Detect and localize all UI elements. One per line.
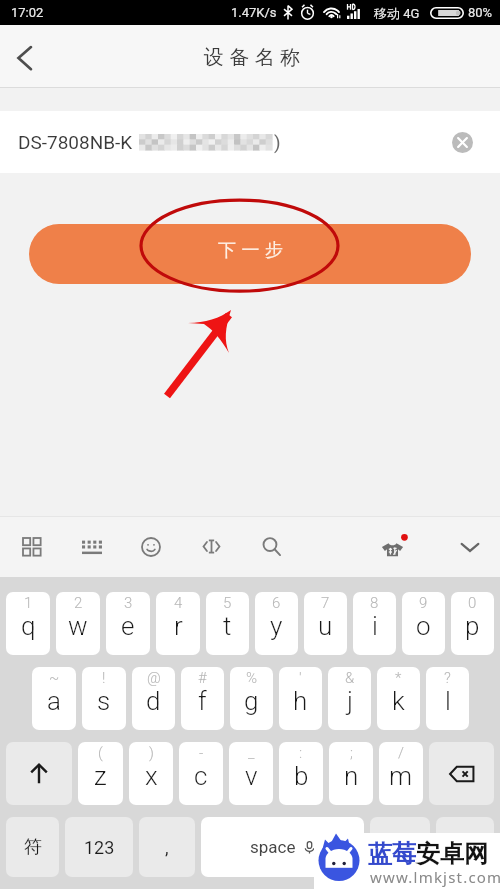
staticText: 换行 bbox=[449, 837, 481, 857]
button[interactable]: Backspace bbox=[429, 742, 494, 805]
staticText: ~ bbox=[49, 669, 60, 687]
staticText: l bbox=[445, 686, 451, 716]
button[interactable]: Grid layout bbox=[14, 516, 50, 577]
staticText: 1.47K/s bbox=[231, 5, 277, 20]
staticText: e bbox=[121, 611, 135, 641]
staticText: 1 bbox=[24, 594, 33, 612]
staticText: 4 bbox=[174, 594, 183, 612]
staticText: p bbox=[465, 611, 480, 641]
staticText: a bbox=[47, 686, 61, 716]
button[interactable]: 123 bbox=[65, 817, 133, 877]
button[interactable]: ) bbox=[129, 742, 173, 805]
button[interactable]: 9 bbox=[402, 592, 445, 655]
button[interactable]: / bbox=[379, 742, 423, 805]
button[interactable]: Theme skin bbox=[374, 516, 410, 577]
staticText: 安卓网 bbox=[416, 839, 488, 869]
staticText: DS-7808NB-K bbox=[18, 131, 133, 153]
staticText: / bbox=[398, 744, 404, 762]
staticText: : bbox=[299, 744, 303, 762]
button[interactable]: Hide keyboard bbox=[452, 516, 488, 577]
button[interactable]: Shift bbox=[6, 742, 72, 805]
staticText: # bbox=[198, 669, 207, 687]
button[interactable]: * bbox=[377, 667, 420, 730]
button[interactable]: _ bbox=[229, 742, 273, 805]
staticText: 9 bbox=[419, 594, 428, 612]
button[interactable]: 5 bbox=[206, 592, 249, 655]
staticText: m bbox=[389, 761, 413, 791]
button[interactable]: ? bbox=[426, 667, 469, 730]
staticText: r bbox=[174, 611, 183, 641]
button[interactable]: @ bbox=[132, 667, 175, 730]
button[interactable]: 8 bbox=[353, 592, 396, 655]
button[interactable]: Emoji bbox=[133, 516, 169, 577]
staticText: w bbox=[68, 611, 88, 641]
button[interactable]: 7 bbox=[304, 592, 347, 655]
button[interactable]: ~ bbox=[32, 667, 76, 730]
button[interactable]: % bbox=[230, 667, 273, 730]
staticText: v bbox=[245, 761, 258, 791]
staticText: @ bbox=[147, 669, 161, 687]
staticText: x bbox=[145, 761, 158, 791]
staticText: y bbox=[270, 611, 283, 641]
button[interactable]: - bbox=[179, 742, 223, 805]
staticText: d bbox=[146, 686, 161, 716]
staticText: www.lmkjst.com bbox=[370, 867, 500, 887]
button[interactable]: & bbox=[328, 667, 371, 730]
button[interactable]: 4 bbox=[156, 592, 200, 655]
button[interactable]: 1 bbox=[6, 592, 50, 655]
button[interactable]: 0 bbox=[451, 592, 494, 655]
staticText: ' bbox=[299, 669, 302, 687]
staticText: j bbox=[347, 686, 353, 716]
button[interactable]: 2 bbox=[56, 592, 100, 655]
staticText: space bbox=[250, 837, 296, 857]
staticText: _ bbox=[248, 744, 255, 762]
staticText: s bbox=[97, 686, 111, 716]
staticText: 2 bbox=[74, 594, 83, 612]
staticText: 设备名称 bbox=[201, 45, 303, 70]
staticText: ) bbox=[274, 131, 281, 153]
button[interactable]: Number pad bbox=[74, 516, 110, 577]
staticText: ( bbox=[98, 744, 103, 762]
button[interactable]: ! bbox=[82, 667, 126, 730]
staticText: 8 bbox=[370, 594, 379, 612]
staticText: q bbox=[21, 611, 36, 641]
button[interactable]: , bbox=[139, 817, 195, 877]
staticText: t bbox=[223, 611, 232, 641]
staticText: & bbox=[345, 669, 355, 687]
button[interactable]: Back bbox=[0, 25, 52, 87]
button[interactable]: ( bbox=[78, 742, 123, 805]
staticText: k bbox=[392, 686, 405, 716]
button[interactable]: # bbox=[181, 667, 224, 730]
button[interactable]: Move cursor bbox=[193, 516, 229, 577]
staticText: - bbox=[199, 744, 204, 762]
staticText: c bbox=[194, 761, 208, 791]
button[interactable]: : bbox=[279, 742, 323, 805]
staticText: 5 bbox=[223, 594, 232, 612]
button[interactable]: 符 bbox=[6, 817, 59, 877]
staticText: ) bbox=[149, 744, 154, 762]
staticText: u bbox=[318, 611, 333, 641]
button[interactable]: 6 bbox=[255, 592, 298, 655]
button[interactable]: ; bbox=[329, 742, 373, 805]
staticText: ; bbox=[350, 744, 353, 762]
staticText: 17:02 bbox=[11, 5, 44, 20]
staticText: 下一步 bbox=[218, 239, 289, 262]
button[interactable]: ' bbox=[279, 667, 322, 730]
button[interactable]: 。 bbox=[370, 817, 430, 877]
staticText: g bbox=[244, 686, 259, 716]
staticText: n bbox=[344, 761, 359, 791]
staticText: , bbox=[165, 837, 169, 858]
staticText: % bbox=[246, 669, 258, 687]
staticText: 0 bbox=[468, 594, 477, 612]
staticText: 蓝莓 bbox=[368, 839, 416, 869]
button[interactable]: Search bbox=[253, 516, 289, 577]
button[interactable]: Clear text bbox=[452, 132, 473, 153]
staticText: 符 bbox=[24, 836, 42, 859]
button[interactable]: 换行 bbox=[436, 817, 494, 877]
button[interactable]: 下一步 bbox=[29, 224, 471, 284]
staticText: 123 bbox=[84, 837, 115, 858]
button[interactable]: 3 bbox=[106, 592, 150, 655]
staticText: 6 bbox=[272, 594, 281, 612]
staticText: 7 bbox=[321, 594, 330, 612]
button[interactable]: space bbox=[201, 817, 364, 877]
